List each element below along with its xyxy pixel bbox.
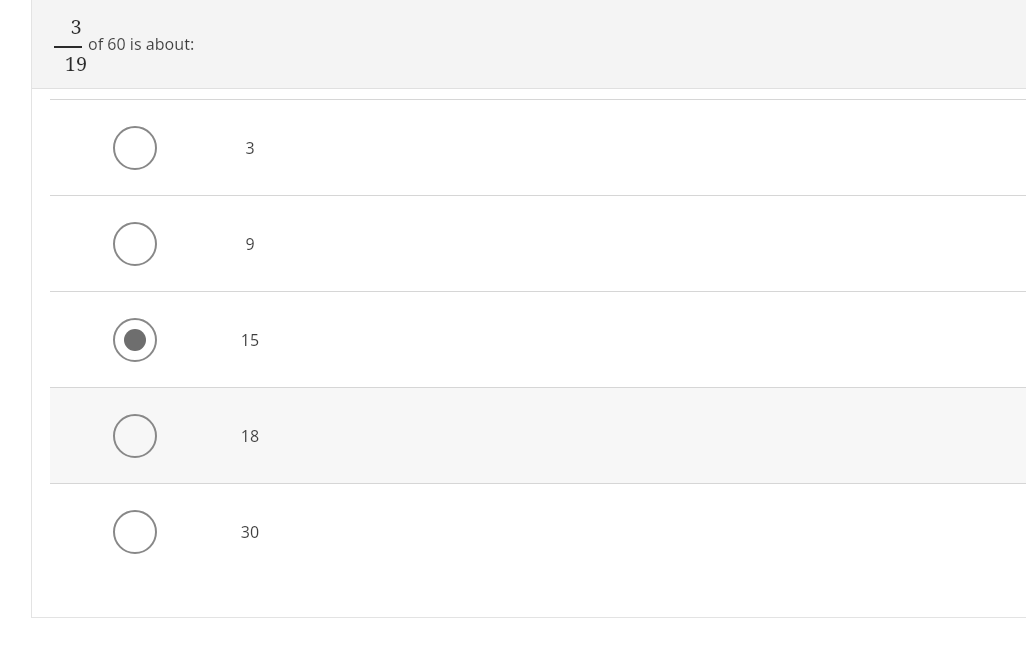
other: Select answer 3: [113, 126, 157, 170]
staticText: 15: [220, 329, 280, 351]
staticText: 3: [220, 137, 280, 159]
button[interactable]: Select answer 9: [31, 196, 1026, 291]
staticText: 19: [51, 50, 101, 77]
staticText: 3: [51, 13, 101, 40]
other: Select answer 30: [113, 510, 157, 554]
staticText: 9: [220, 233, 280, 255]
button[interactable]: Select answer 18: [31, 388, 1026, 483]
staticText: 30: [220, 521, 280, 543]
button[interactable]: Select answer 3: [31, 100, 1026, 195]
staticText: 18: [220, 425, 280, 447]
staticText: of 60 is about:: [88, 33, 195, 55]
other: Select answer 15: [113, 318, 157, 362]
other: Select answer 18: [113, 414, 157, 458]
other: Select answer 9: [113, 222, 157, 266]
button[interactable]: Select answer 30: [31, 484, 1026, 579]
button[interactable]: Select answer 15: [31, 292, 1026, 387]
